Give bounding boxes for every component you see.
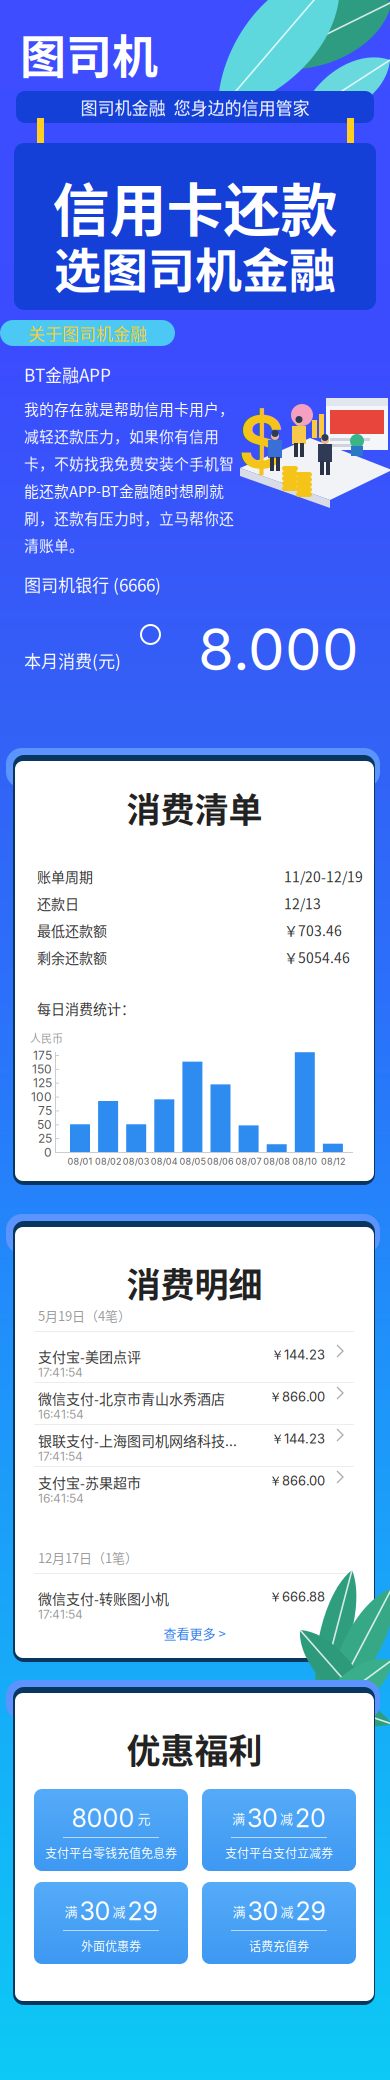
- button[interactable]: 查看更多 >: [15, 1622, 374, 1644]
- staticText: 16:41:54: [38, 1491, 84, 1505]
- staticText: ￥144.23: [271, 1431, 325, 1447]
- staticText: 08/08: [263, 1156, 290, 1167]
- staticText: 25: [38, 1131, 52, 1146]
- staticText: 消费明细: [126, 1258, 262, 1307]
- staticText: BT金融APP: [24, 362, 111, 387]
- staticText: ￥666.88: [269, 1589, 325, 1605]
- staticText: 支付平台支付立减券: [225, 1844, 333, 1861]
- staticText: 选图司机金融: [54, 233, 336, 301]
- staticText: 微信支付-北京市青山水秀酒店: [38, 1388, 225, 1408]
- button[interactable]: 银联支付-上海图司机网络科技...: [15, 1425, 374, 1467]
- staticText: 11/20-12/19: [284, 866, 363, 886]
- staticText: 支付宝-美团点评: [38, 1346, 141, 1366]
- staticText: 图司机: [20, 20, 158, 87]
- staticText: 75: [38, 1103, 52, 1118]
- staticText: 银联支付-上海图司机网络科技...: [38, 1430, 237, 1450]
- staticText: 08/05: [179, 1156, 205, 1167]
- staticText: 20: [295, 1803, 326, 1833]
- staticText: 08/04: [151, 1156, 178, 1167]
- staticText: 优惠福利: [126, 1724, 262, 1773]
- staticText: 5月19日（4笔）: [38, 1306, 131, 1325]
- staticText: 29: [295, 1896, 325, 1926]
- staticText: $: [238, 398, 285, 485]
- staticText: 查看更多 >: [163, 1624, 225, 1642]
- staticText: 175: [33, 1048, 52, 1062]
- staticText: 图司机银行 (6666): [24, 572, 161, 597]
- button[interactable]: 满: [34, 1882, 188, 1964]
- button[interactable]: 8000: [34, 1789, 188, 1871]
- staticText: 还款日: [37, 893, 79, 913]
- staticText: 08/01: [67, 1156, 92, 1167]
- staticText: 微信支付-转账图小机: [38, 1588, 169, 1608]
- staticText: 125: [33, 1076, 52, 1090]
- staticText: 29: [127, 1896, 157, 1926]
- staticText: 满: [64, 1902, 77, 1920]
- staticText: 08/12: [321, 1156, 345, 1167]
- staticText: 信用卡还款: [52, 165, 337, 247]
- staticText: 150: [32, 1062, 52, 1076]
- staticText: 账单周期: [37, 866, 93, 886]
- staticText: 16:41:54: [38, 1407, 84, 1421]
- staticText: 08/02: [95, 1156, 121, 1167]
- button[interactable]: 微信支付-北京市青山水秀酒店: [15, 1383, 374, 1425]
- staticText: 08/07: [236, 1156, 262, 1167]
- staticText: 我的存在就是帮助信用卡用户，减轻还款压力，如果你有信用卡，不妨找我免费安装个手机…: [24, 398, 234, 556]
- staticText: 8000: [71, 1803, 134, 1833]
- staticText: 12月17日（1笔）: [38, 1548, 138, 1567]
- button[interactable]: 微信支付-转账图小机: [15, 1583, 374, 1625]
- staticText: 30: [79, 1896, 110, 1926]
- staticText: 30: [247, 1803, 278, 1833]
- staticText: 剩余还款额: [37, 947, 107, 967]
- staticText: 08/03: [123, 1156, 150, 1167]
- button[interactable]: 支付宝-美团点评: [15, 1341, 374, 1383]
- staticText: 0: [44, 1145, 52, 1159]
- staticText: 17:41:54: [38, 1607, 83, 1621]
- staticText: 最低还款额: [37, 920, 107, 940]
- staticText: ￥866.00: [269, 1389, 325, 1405]
- staticText: 17:41:54: [38, 1449, 83, 1463]
- staticText: 支付平台零钱充值免息券: [45, 1844, 177, 1861]
- staticText: 外面优惠券: [81, 1937, 141, 1954]
- staticText: 17:41:54: [38, 1365, 83, 1379]
- staticText: ￥144.23: [271, 1347, 325, 1363]
- staticText: 满: [232, 1902, 245, 1920]
- staticText: 30: [247, 1896, 278, 1926]
- button[interactable]: 满: [202, 1789, 356, 1871]
- staticText: 减: [112, 1902, 125, 1920]
- staticText: 元: [137, 1809, 150, 1827]
- staticText: 减: [280, 1902, 293, 1920]
- staticText: 支付宝-苏果超市: [38, 1472, 141, 1492]
- staticText: 08/10: [292, 1156, 317, 1167]
- staticText: 本月消费(元): [24, 648, 121, 673]
- staticText: ￥5054.46: [284, 947, 350, 967]
- staticText: 100: [31, 1090, 52, 1104]
- staticText: ￥703.46: [284, 920, 342, 940]
- staticText: 每日消费统计：: [37, 998, 135, 1018]
- staticText: 话费充值券: [249, 1937, 309, 1954]
- staticText: ￥866.00: [269, 1473, 325, 1489]
- button[interactable]: 满: [202, 1882, 356, 1964]
- staticText: 50: [37, 1117, 52, 1132]
- staticText: 满: [232, 1809, 245, 1827]
- staticText: 消费清单: [126, 783, 262, 832]
- staticText: 人民币: [30, 1030, 63, 1046]
- staticText: 减: [280, 1809, 293, 1827]
- staticText: 关于图司机金融: [28, 321, 147, 345]
- button[interactable]: 支付宝-苏果超市: [15, 1467, 374, 1509]
- staticText: 08/06: [207, 1156, 234, 1167]
- staticText: 8.000: [198, 614, 359, 684]
- staticText: 12/13: [284, 893, 321, 913]
- staticText: 图司机金融 您身边的信用管家: [80, 95, 309, 119]
